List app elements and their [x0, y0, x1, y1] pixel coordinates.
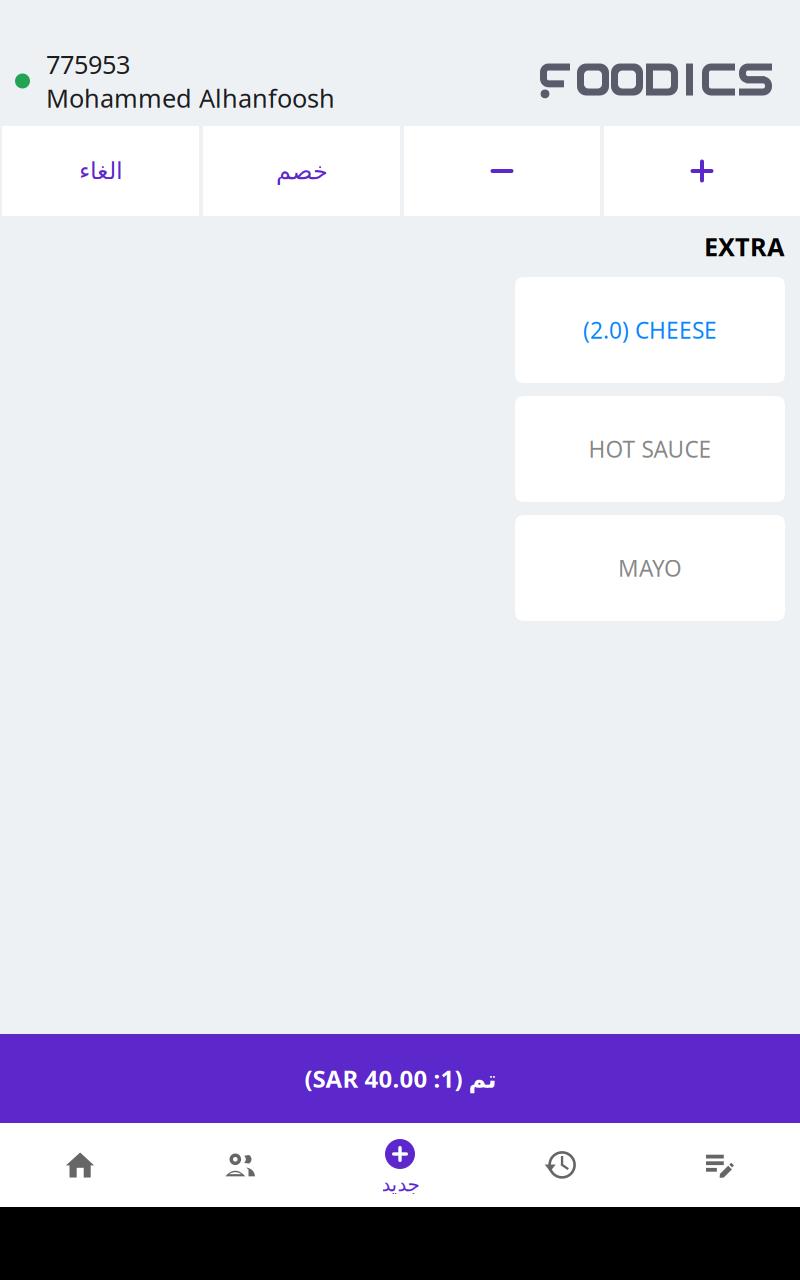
- staticText: تم (1: SAR 40.00): [304, 1063, 496, 1094]
- button[interactable]: خصم: [203, 126, 400, 216]
- button[interactable]: الغاء: [2, 126, 199, 216]
- button[interactable]: (2.0) CHEESE: [515, 277, 785, 383]
- button[interactable]: Home: [0, 1123, 160, 1207]
- button[interactable]: Edit order: [640, 1123, 800, 1207]
- staticText: جديد: [381, 1173, 419, 1196]
- staticText: Mohammed Alhanfoosh: [46, 81, 335, 115]
- staticText: MAYO: [618, 553, 682, 583]
- button[interactable]: MAYO: [515, 515, 785, 621]
- button[interactable]: Decrease quantity: [404, 126, 600, 216]
- button[interactable]: Customers: [160, 1123, 320, 1207]
- staticText: (2.0) CHEESE: [583, 315, 717, 345]
- button[interactable]: HOT SAUCE: [515, 396, 785, 502]
- staticText: 775953: [46, 47, 130, 81]
- staticText: HOT SAUCE: [588, 434, 711, 464]
- button[interactable]: جديد: [320, 1123, 480, 1207]
- button[interactable]: Increase quantity: [604, 126, 800, 216]
- staticText: خصم: [275, 157, 327, 185]
- staticText: الغاء: [78, 157, 122, 185]
- button[interactable]: تم (1: SAR 40.00): [0, 1034, 800, 1123]
- button[interactable]: History: [480, 1123, 640, 1207]
- staticText: EXTRA: [704, 230, 785, 263]
